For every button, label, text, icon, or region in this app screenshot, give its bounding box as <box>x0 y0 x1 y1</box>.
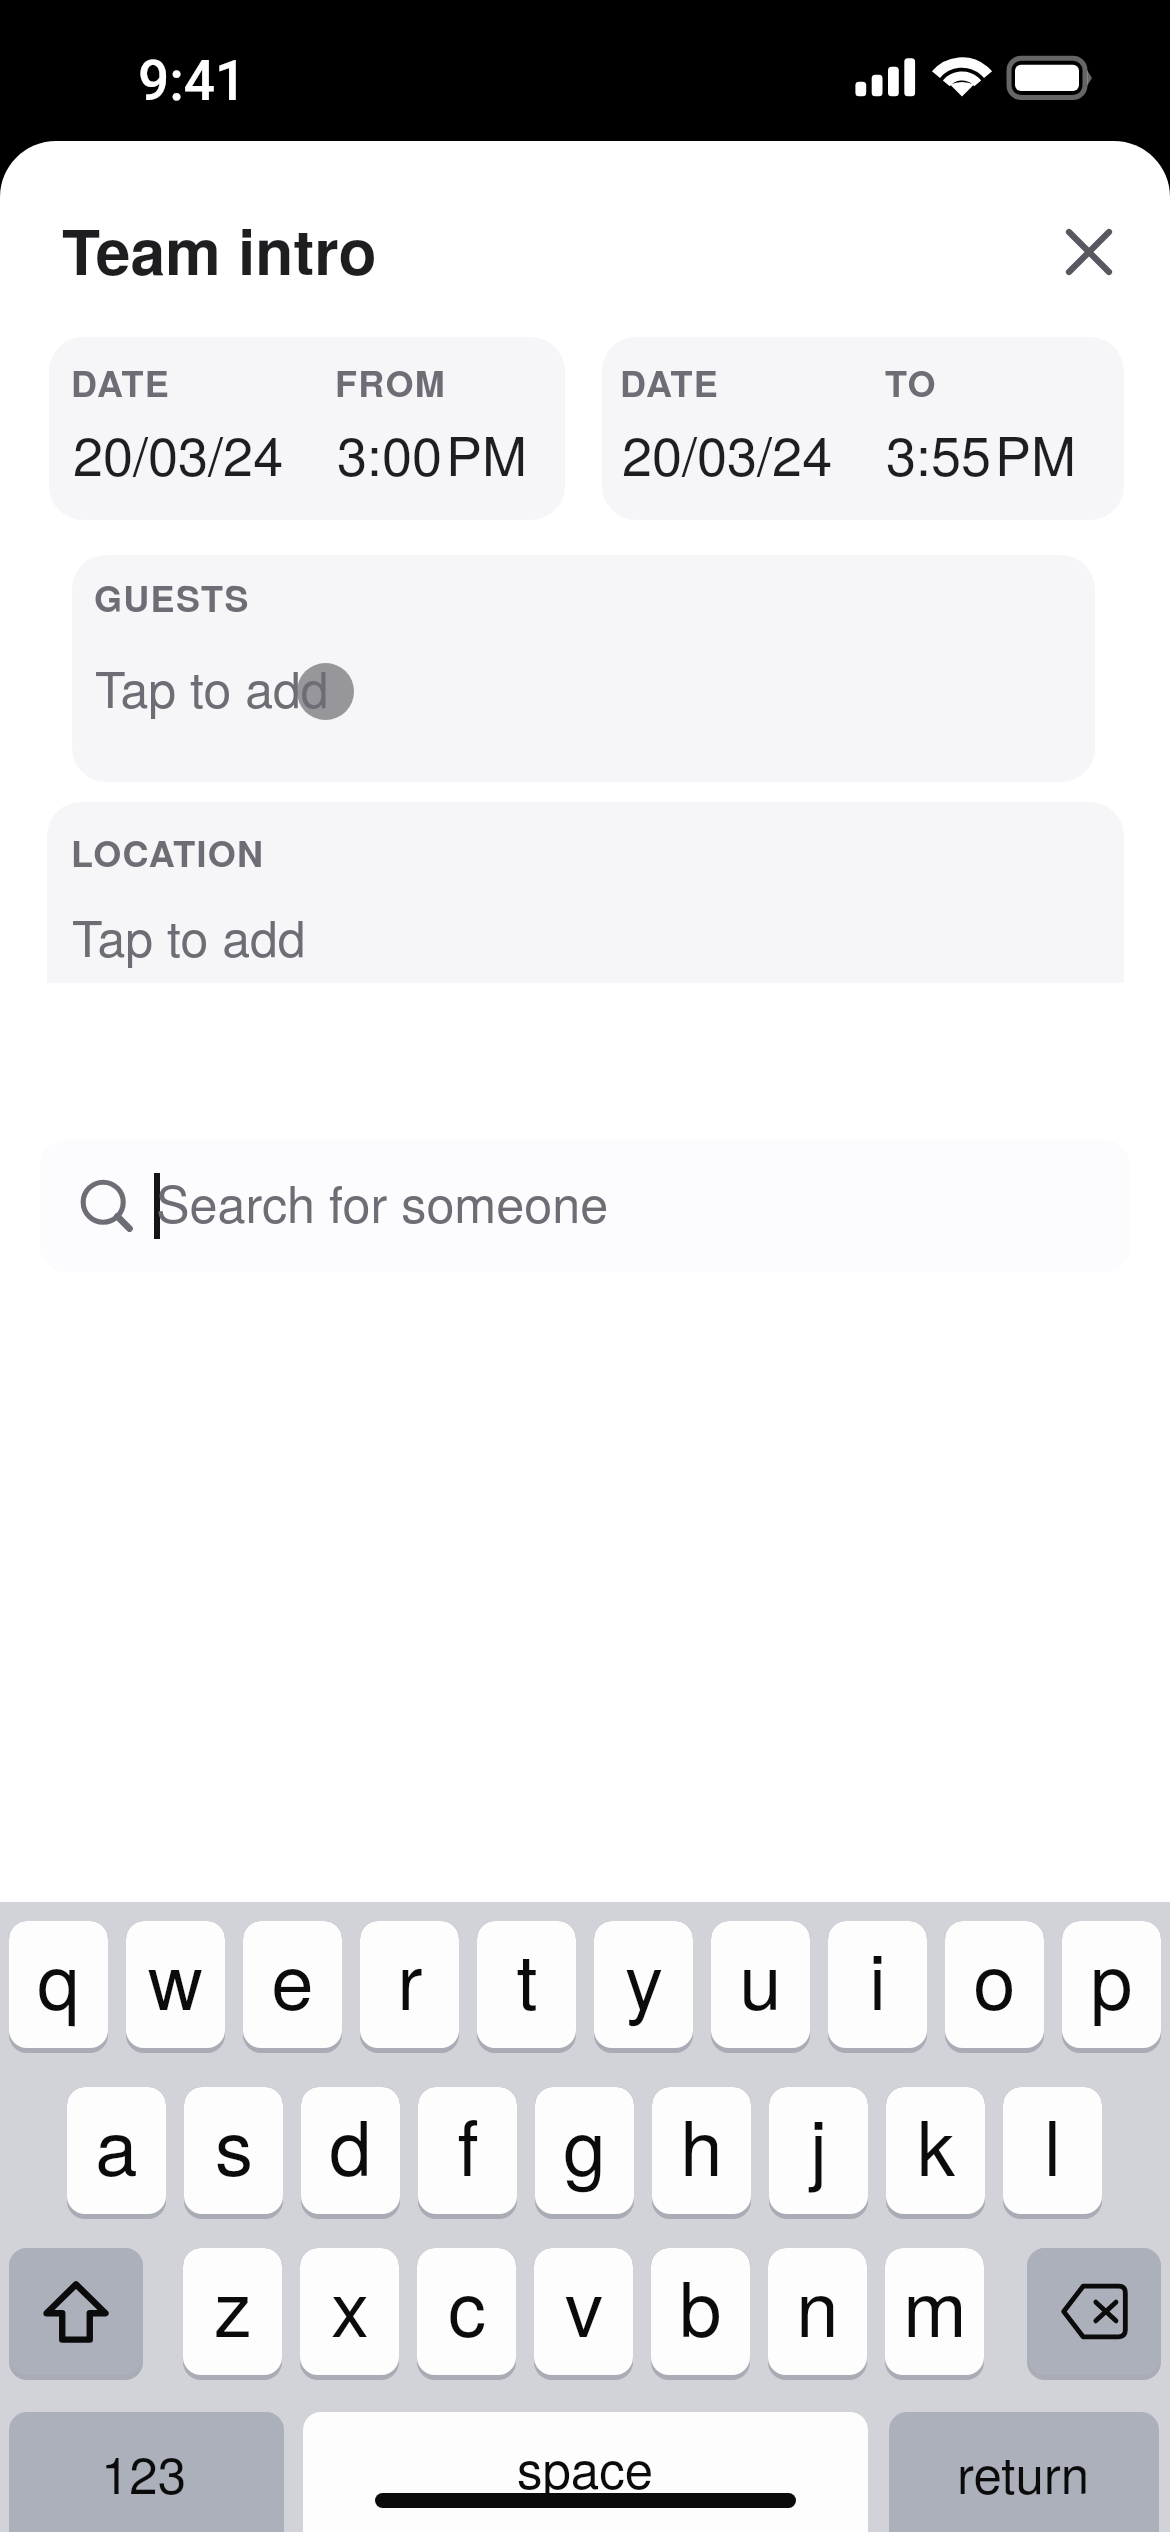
staticText: DATE <box>620 356 720 408</box>
staticText: Team intro <box>62 205 377 294</box>
button[interactable]: q <box>9 1921 108 2053</box>
button[interactable]: c <box>417 2248 516 2380</box>
staticText: Tap to add <box>95 651 329 723</box>
staticText: Search for someone <box>156 1165 609 1237</box>
staticText: m <box>903 2250 967 2359</box>
staticText: p <box>1090 1923 1133 2032</box>
staticText: o <box>973 1923 1016 2032</box>
staticText: Tap to add <box>72 900 306 972</box>
staticText: g <box>563 2089 606 2198</box>
staticText: 9:41 <box>138 49 247 113</box>
staticText: return <box>957 2435 1090 2508</box>
button[interactable]: g <box>535 2087 634 2219</box>
button[interactable]: n <box>768 2248 867 2380</box>
staticText: c <box>448 2250 486 2359</box>
staticText: l <box>1044 2089 1061 2198</box>
button[interactable]: w <box>126 1921 225 2053</box>
staticText: FROM <box>335 356 447 408</box>
staticText: z <box>214 2250 252 2359</box>
staticText: s <box>215 2089 253 2198</box>
staticText: DATE <box>71 356 171 408</box>
button[interactable]: t <box>477 1921 576 2053</box>
button[interactable]: m <box>885 2248 984 2380</box>
button[interactable]: f <box>418 2087 517 2219</box>
staticText: PM <box>995 414 1076 491</box>
button[interactable]: DATE <box>602 337 1124 520</box>
button[interactable]: s <box>184 2087 283 2219</box>
staticText: TO <box>885 356 937 408</box>
button[interactable]: return <box>889 2412 1159 2532</box>
staticText: 3:00 <box>337 414 443 491</box>
button[interactable]: LOCATION <box>47 802 1124 983</box>
staticText: f <box>457 2089 479 2198</box>
staticText: j <box>810 2089 827 2198</box>
staticText: x <box>331 2250 369 2359</box>
staticText: v <box>565 2250 603 2359</box>
staticText: 20/03/24 <box>622 414 833 491</box>
button[interactable]: y <box>594 1921 693 2053</box>
button[interactable]: p <box>1062 1921 1161 2053</box>
button[interactable]: Search for someone <box>40 1140 1130 1272</box>
button[interactable]: a <box>67 2087 166 2219</box>
staticText: GUESTS <box>94 571 250 623</box>
button[interactable]: h <box>652 2087 751 2219</box>
button[interactable]: Backspace <box>1027 2248 1161 2380</box>
staticText: PM <box>446 414 527 491</box>
button[interactable]: Shift <box>9 2248 143 2380</box>
button[interactable]: Close <box>1034 197 1144 307</box>
staticText: 3:55 <box>886 414 992 491</box>
staticText: LOCATION <box>71 826 265 878</box>
staticText: t <box>516 1923 538 2032</box>
staticText: w <box>148 1923 203 2032</box>
button[interactable]: u <box>711 1921 810 2053</box>
button[interactable]: d <box>301 2087 400 2219</box>
button[interactable]: e <box>243 1921 342 2053</box>
button[interactable]: GUESTS <box>72 555 1095 782</box>
button[interactable]: o <box>945 1921 1044 2053</box>
button[interactable]: l <box>1003 2087 1102 2219</box>
button[interactable]: v <box>534 2248 633 2380</box>
button[interactable]: k <box>886 2087 985 2219</box>
button[interactable]: x <box>300 2248 399 2380</box>
button[interactable]: DATE <box>49 337 565 520</box>
staticText: a <box>95 2089 138 2198</box>
staticText: n <box>796 2250 839 2359</box>
button[interactable]: i <box>828 1921 927 2053</box>
staticText: space <box>517 2430 654 2503</box>
staticText: i <box>869 1923 886 2032</box>
button[interactable]: b <box>651 2248 750 2380</box>
staticText: b <box>679 2250 722 2359</box>
staticText: d <box>329 2089 372 2198</box>
staticText: r <box>397 1923 423 2032</box>
staticText: 20/03/24 <box>73 414 284 491</box>
staticText: e <box>271 1923 314 2032</box>
staticText: 123 <box>101 2435 187 2508</box>
staticText: y <box>625 1923 663 2032</box>
staticText: k <box>917 2089 955 2198</box>
button[interactable]: j <box>769 2087 868 2219</box>
button[interactable]: z <box>183 2248 282 2380</box>
button[interactable]: 123 <box>9 2412 284 2532</box>
button[interactable]: space <box>303 2412 868 2532</box>
staticText: h <box>680 2089 723 2198</box>
staticText: u <box>739 1923 782 2032</box>
button[interactable]: r <box>360 1921 459 2053</box>
staticText: q <box>37 1923 80 2032</box>
